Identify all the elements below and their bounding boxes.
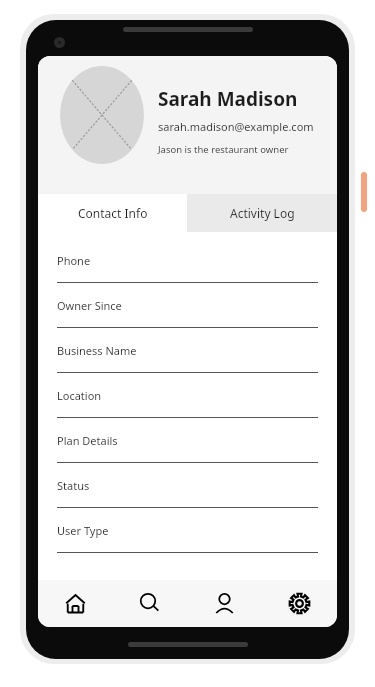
staticText: Location: [57, 388, 102, 403]
button[interactable]: Status: [38, 463, 337, 508]
button[interactable]: Settings: [262, 580, 337, 627]
staticText: Activity Log: [230, 205, 295, 221]
button[interactable]: Activity Log: [187, 194, 337, 232]
button[interactable]: User Type: [38, 508, 337, 553]
staticText: Sarah Madison: [158, 86, 298, 112]
staticText: Business Name: [57, 343, 137, 358]
button[interactable]: Plan Details: [38, 418, 337, 463]
button[interactable]: Search: [112, 580, 187, 627]
button[interactable]: Owner Since: [38, 283, 337, 328]
staticText: sarah.madison@example.com: [158, 119, 314, 134]
staticText: Jason is the restaurant owner: [158, 143, 289, 156]
staticText: Status: [57, 478, 90, 493]
button[interactable]: Phone: [38, 238, 337, 283]
button[interactable]: Business Name: [38, 328, 337, 373]
staticText: Plan Details: [57, 433, 118, 448]
staticText: Contact Info: [78, 205, 148, 221]
button[interactable]: Contact Info: [38, 194, 187, 232]
button[interactable]: Profile: [187, 580, 262, 627]
staticText: User Type: [57, 523, 109, 538]
staticText: Owner Since: [57, 298, 122, 313]
button[interactable]: Home: [38, 580, 112, 627]
staticText: Phone: [57, 253, 91, 268]
button[interactable]: Location: [38, 373, 337, 418]
